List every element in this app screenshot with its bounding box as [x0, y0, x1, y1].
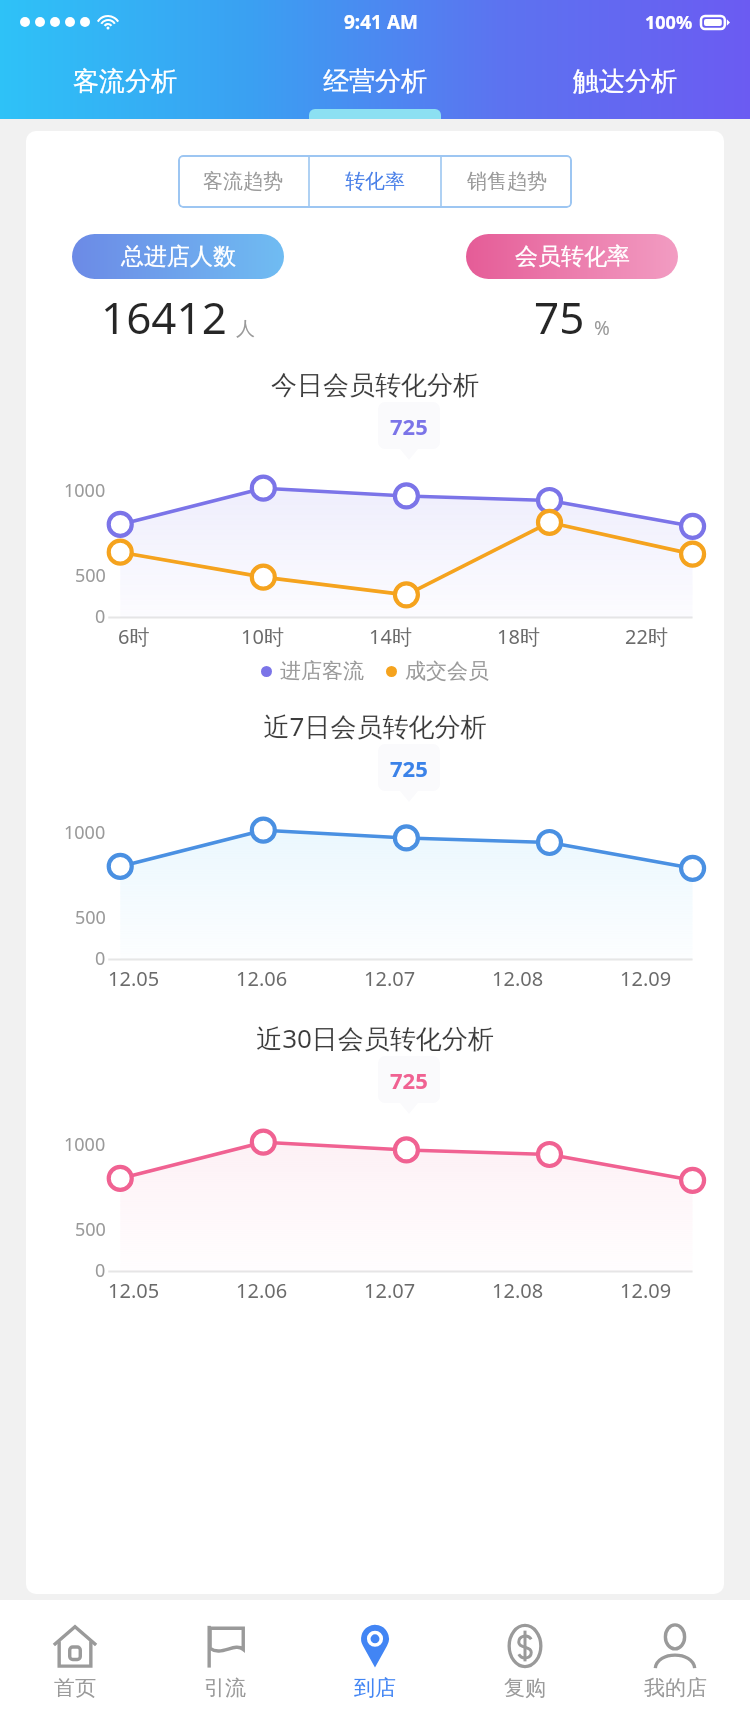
staticText: 10时 — [241, 623, 284, 650]
staticText: 725 — [390, 753, 428, 783]
staticText: 500 — [75, 563, 106, 588]
staticText: 成交会员 — [405, 658, 489, 684]
staticText: 12.08 — [492, 1277, 544, 1304]
staticText: 22时 — [625, 623, 668, 650]
staticText: 1000 — [64, 478, 106, 503]
staticText: 1000 — [64, 820, 106, 845]
staticText: 转化率 — [345, 169, 405, 194]
staticText: 销售趋势 — [467, 169, 547, 194]
staticText: 1000 — [64, 1132, 106, 1157]
button[interactable]: 首页 — [0, 1600, 150, 1723]
staticText: 12.06 — [236, 965, 288, 992]
staticText: 会员转化率 — [515, 242, 630, 271]
staticText: 12.05 — [108, 965, 160, 992]
staticText: 我的店 — [644, 1675, 707, 1701]
staticText: 首页 — [54, 1675, 96, 1701]
staticText: 725 — [390, 411, 428, 441]
staticText: 0 — [95, 946, 106, 971]
button[interactable]: 会员转化率 — [466, 234, 678, 279]
button[interactable]: 到店 — [300, 1600, 450, 1723]
button[interactable]: 转化率 — [310, 155, 440, 208]
staticText: 500 — [75, 905, 106, 930]
staticText: 14时 — [369, 623, 412, 650]
staticText: 经营分析 — [323, 65, 427, 98]
button[interactable]: 客流趋势 — [178, 155, 308, 208]
button[interactable]: 销售趋势 — [442, 155, 572, 208]
staticText: 500 — [75, 1217, 106, 1242]
button[interactable]: 经营分析 — [250, 44, 500, 119]
staticText: 12.08 — [492, 965, 544, 992]
staticText: 进店客流 — [280, 658, 364, 684]
staticText: 18时 — [497, 623, 540, 650]
staticText: % — [594, 315, 610, 341]
staticText: 16412 — [101, 287, 227, 347]
staticText: 客流趋势 — [203, 169, 283, 194]
staticText: 100% — [645, 10, 693, 35]
staticText: 12.09 — [620, 965, 672, 992]
staticText: 近30日会员转化分析 — [26, 1020, 724, 1056]
staticText: 12.07 — [364, 965, 416, 992]
staticText: 触达分析 — [573, 65, 677, 98]
staticText: 12.07 — [364, 1277, 416, 1304]
staticText: 到店 — [354, 1675, 396, 1701]
button[interactable]: 触达分析 — [500, 44, 750, 119]
staticText: 6时 — [118, 623, 150, 650]
staticText: 总进店人数 — [121, 242, 236, 271]
button[interactable]: 复购 — [450, 1600, 600, 1723]
staticText: 0 — [95, 604, 106, 629]
staticText: 引流 — [204, 1675, 246, 1701]
staticText: 复购 — [504, 1675, 546, 1701]
staticText: 人 — [236, 317, 255, 341]
staticText: 今日会员转化分析 — [26, 369, 724, 402]
staticText: 12.06 — [236, 1277, 288, 1304]
staticText: 客流分析 — [73, 65, 177, 98]
staticText: 75 — [534, 287, 585, 347]
button[interactable]: 客流分析 — [0, 44, 250, 119]
staticText: 12.05 — [108, 1277, 160, 1304]
staticText: 0 — [95, 1258, 106, 1283]
button[interactable]: 我的店 — [600, 1600, 750, 1723]
staticText: 725 — [390, 1065, 428, 1095]
staticText: 近7日会员转化分析 — [26, 708, 724, 744]
button[interactable]: 引流 — [150, 1600, 300, 1723]
staticText: 12.09 — [620, 1277, 672, 1304]
staticText: 9:41 AM — [344, 9, 418, 35]
button[interactable]: 总进店人数 — [72, 234, 284, 279]
